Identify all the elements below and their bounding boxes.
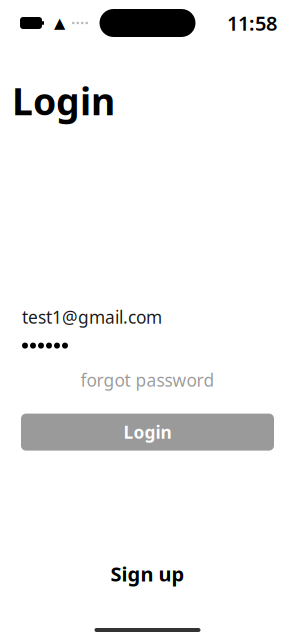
staticText: Login bbox=[123, 421, 171, 444]
staticText: forgot password bbox=[80, 369, 214, 392]
staticText: ▲ bbox=[54, 15, 65, 31]
staticText: test1@gmail.com bbox=[22, 306, 162, 329]
staticText: Login bbox=[12, 76, 115, 126]
button[interactable]: forgot password bbox=[0, 365, 295, 396]
staticText: 11:58 bbox=[227, 10, 277, 36]
button[interactable]: Sign up bbox=[0, 554, 295, 593]
staticText: Sign up bbox=[110, 560, 184, 587]
button[interactable]: Login bbox=[21, 414, 274, 451]
